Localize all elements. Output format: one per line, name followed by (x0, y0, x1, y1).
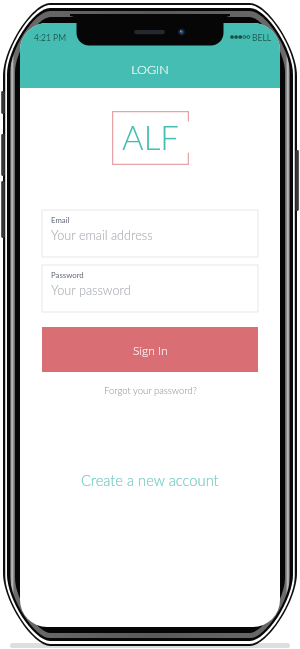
staticText: 4:21 PM (34, 33, 67, 43)
staticText: Sign In (133, 343, 168, 357)
button[interactable]: Sign In (42, 327, 258, 372)
button[interactable]: Create a new account (71, 466, 229, 494)
staticText: ALF (122, 117, 179, 157)
staticText: Forgot your password? (104, 385, 197, 396)
staticText: Your email address (51, 227, 153, 242)
staticText: Create a new account (81, 471, 219, 489)
button[interactable]: Forgot your password? (94, 381, 207, 400)
staticText: LOGIN (20, 62, 280, 77)
button[interactable]: Password (42, 265, 258, 312)
staticText: Email (51, 215, 70, 224)
button[interactable]: Email (42, 210, 258, 257)
staticText: Your password (51, 282, 131, 297)
staticText: Password (51, 270, 84, 279)
staticText: BELL (252, 33, 272, 43)
